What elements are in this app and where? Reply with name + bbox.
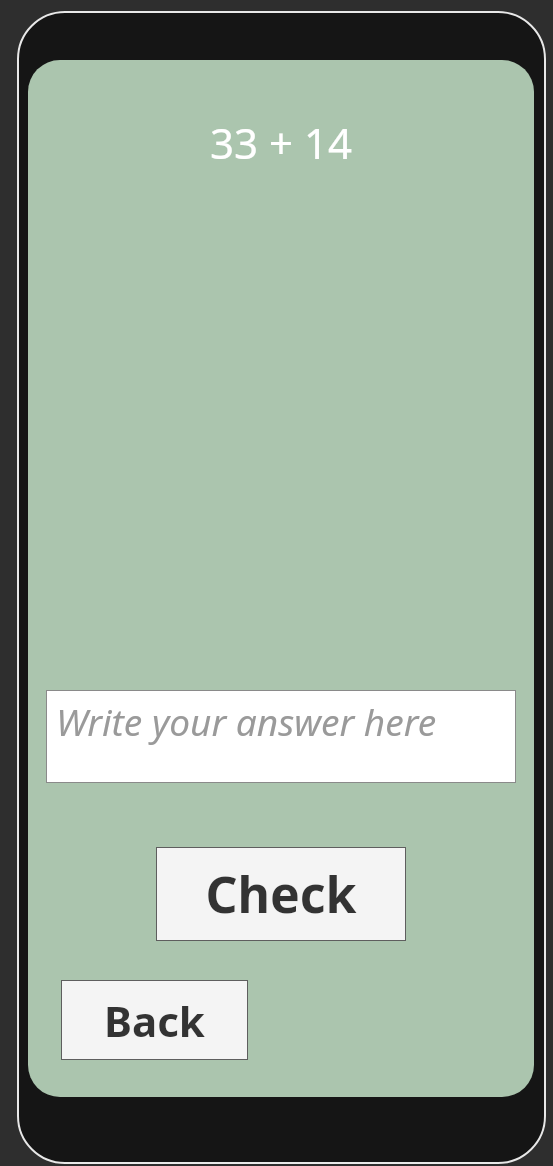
- staticText: Write your answer here: [56, 696, 437, 746]
- button[interactable]: Check: [156, 847, 406, 941]
- staticText: Back: [104, 992, 205, 1049]
- button[interactable]: Back: [61, 980, 248, 1060]
- staticText: Check: [205, 860, 357, 928]
- staticText: 33 + 14: [210, 114, 352, 171]
- button[interactable]: Write your answer here: [46, 690, 516, 783]
